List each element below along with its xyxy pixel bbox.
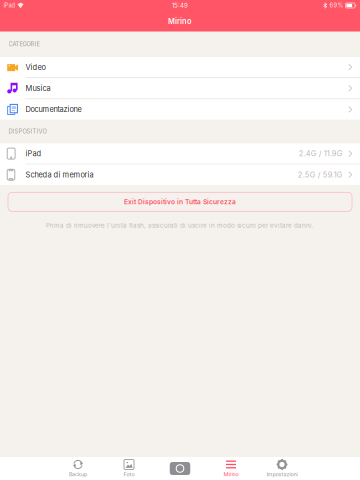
staticText: iPad [4, 2, 16, 9]
staticText: DISPOSITIVO [8, 128, 46, 135]
button[interactable]: Backup [52, 457, 103, 480]
staticText: 15:49 [172, 2, 188, 9]
button[interactable]: Musica [0, 78, 360, 99]
button[interactable]: iPad [0, 143, 360, 164]
staticText: Backup [69, 471, 87, 478]
button[interactable]: Documentazione [0, 99, 360, 120]
staticText: Documentazione [25, 105, 81, 114]
staticText: CATEGORIE [8, 41, 39, 48]
staticText: 69% [330, 2, 344, 9]
button[interactable]: Impostazioni [256, 457, 307, 480]
button[interactable]: Scatta [154, 457, 205, 480]
staticText: Foto [123, 471, 134, 478]
staticText: Exit Dispositivo in Tutta Sicurezza [124, 198, 236, 206]
staticText: Video [25, 63, 45, 72]
staticText: Mirino [223, 471, 238, 478]
staticText: iPad [25, 149, 41, 158]
button[interactable]: Exit Dispositivo in Tutta Sicurezza [8, 192, 352, 211]
staticText: 2.4G / 11.9G [299, 149, 343, 158]
staticText: Mirino [168, 17, 192, 26]
staticText: Prima di rimuovere l'unità flash, assicu… [46, 222, 314, 229]
button[interactable]: Scheda di memoria [0, 164, 360, 185]
staticText: Musica [25, 84, 50, 93]
button[interactable]: Foto [103, 457, 154, 480]
staticText: 2.5G / 59.1G [298, 170, 343, 179]
staticText: Impostazioni [266, 471, 297, 478]
button[interactable]: Mirino [205, 457, 256, 480]
button[interactable]: Video [0, 57, 360, 78]
staticText: Scheda di memoria [25, 170, 93, 179]
